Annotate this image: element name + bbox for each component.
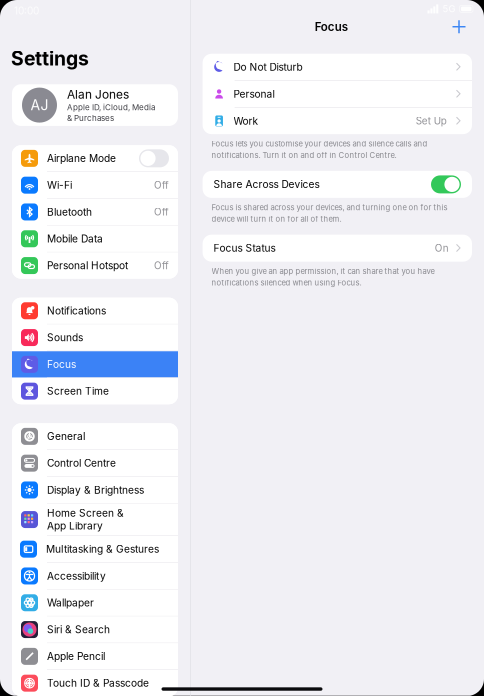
staticText: Focus Status: [214, 242, 276, 254]
staticText: AJ: [30, 97, 48, 113]
staticText: Display & Brightness: [47, 484, 144, 496]
staticText: Apple Pencil: [47, 650, 105, 662]
staticText: Wallpaper: [47, 597, 94, 609]
staticText: Siri & Search: [47, 623, 110, 636]
button[interactable]: Airplane Mode: [12, 145, 178, 171]
button[interactable]: Focus: [12, 351, 178, 377]
button[interactable]: Mobile Data: [12, 226, 178, 252]
button[interactable]: Add Focus: [446, 14, 472, 40]
staticText: Personal Hotspot: [47, 259, 128, 272]
button[interactable]: Apple Pencil: [12, 643, 178, 669]
staticText: Focus: [315, 20, 348, 34]
button[interactable]: Touch ID & Passcode: [12, 670, 178, 696]
button[interactable]: Screen Time: [12, 378, 178, 404]
button[interactable]: Display & Brightness: [12, 477, 178, 503]
staticText: device will turn it on for all of them.: [212, 214, 342, 224]
button[interactable]: Home Screen &: [12, 504, 178, 535]
button[interactable]: Do Not Disturb: [203, 54, 472, 80]
staticText: Work: [234, 115, 259, 127]
staticText: Personal: [234, 88, 275, 100]
staticText: Apple ID, iCloud, Media: [67, 103, 155, 112]
staticText: Do Not Disturb: [234, 61, 303, 73]
staticText: Focus: [47, 358, 76, 370]
button[interactable]: Bluetooth: [12, 199, 178, 225]
button[interactable]: Notifications: [12, 298, 178, 324]
button[interactable]: Work: [203, 108, 472, 134]
staticText: Off: [154, 206, 169, 218]
staticText: Off: [154, 260, 169, 271]
staticText: Control Centre: [47, 457, 116, 469]
button[interactable]: Multitasking & Gestures: [12, 536, 178, 562]
staticText: Mobile Data: [47, 233, 103, 245]
button[interactable]: Wi-Fi: [12, 172, 178, 198]
staticText: Home Screen &: [47, 507, 124, 519]
staticText: & Purchases: [67, 113, 114, 123]
staticText: notifications silenced when using Focus.: [212, 278, 362, 287]
staticText: On: [435, 242, 449, 254]
button[interactable]: Sounds: [12, 324, 178, 351]
staticText: Off: [154, 179, 169, 191]
staticText: 5G: [442, 3, 455, 14]
staticText: Sounds: [47, 331, 83, 344]
button[interactable]: Accessibility: [12, 563, 178, 589]
button[interactable]: General: [12, 423, 178, 449]
staticText: Screen Time: [47, 385, 109, 397]
staticText: 10:00: [14, 5, 39, 17]
button[interactable]: Wallpaper: [12, 590, 178, 616]
staticText: notifications. Turn it on and off in Con…: [212, 151, 397, 160]
staticText: When you give an app permission, it can …: [212, 267, 435, 276]
button[interactable]: Siri & Search: [12, 616, 178, 643]
button[interactable]: Control Centre: [12, 450, 178, 476]
staticText: Bluetooth: [47, 206, 92, 218]
staticText: Touch ID & Passcode: [47, 677, 149, 689]
staticText: Settings: [11, 47, 89, 70]
staticText: Airplane Mode: [47, 152, 116, 164]
button[interactable]: Personal Hotspot: [12, 252, 178, 279]
staticText: Notifications: [47, 305, 106, 317]
staticText: General: [47, 430, 85, 442]
button[interactable]: AJ: [0, 84, 190, 126]
staticText: Focus lets you customise your devices an…: [212, 139, 428, 148]
staticText: Focus is shared across your devices, and…: [212, 203, 448, 212]
button[interactable]: Share Across Devices: [191, 171, 484, 198]
staticText: Alan Jones: [67, 87, 129, 102]
button[interactable]: Personal: [203, 81, 472, 107]
staticText: Share Across Devices: [214, 178, 320, 191]
staticText: Wi-Fi: [47, 179, 72, 191]
staticText: Multitasking & Gestures: [46, 543, 159, 555]
staticText: Set Up: [416, 115, 447, 127]
staticText: App Library: [47, 520, 103, 532]
staticText: Accessibility: [47, 570, 106, 582]
button[interactable]: Focus Status: [191, 235, 484, 262]
